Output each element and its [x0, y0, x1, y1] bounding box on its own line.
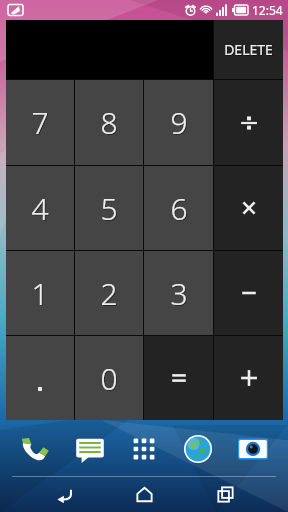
staticText: 6	[170, 188, 188, 229]
button[interactable]: Apps	[125, 430, 163, 468]
button[interactable]: 2	[75, 251, 143, 335]
staticText: 9	[170, 102, 188, 143]
staticText: 12:54	[252, 2, 283, 18]
staticText: 2	[101, 274, 119, 315]
button[interactable]: 7	[6, 80, 74, 165]
button[interactable]	[144, 336, 213, 420]
staticText: 0	[100, 358, 118, 399]
staticText: 1	[31, 273, 49, 314]
staticText: 8	[101, 103, 119, 144]
button[interactable]: DELETE	[214, 20, 283, 79]
button[interactable]: Home	[127, 477, 161, 511]
button[interactable]: 4	[6, 166, 74, 250]
button[interactable]	[214, 80, 283, 165]
button[interactable]	[214, 251, 283, 335]
staticText: 5	[101, 189, 119, 230]
staticText: 3	[171, 274, 189, 315]
staticText: 7	[31, 102, 49, 143]
staticText: DELETE	[224, 40, 273, 59]
staticText: 9	[171, 103, 189, 144]
staticText: 0	[101, 359, 119, 400]
staticText: 1	[32, 274, 50, 315]
button[interactable]: Messaging	[71, 430, 109, 468]
button[interactable]: 0	[75, 336, 143, 420]
staticText: 8	[100, 102, 118, 143]
staticText: 6	[171, 189, 189, 230]
staticText: 3	[170, 273, 188, 314]
button[interactable]: 3	[144, 251, 213, 335]
button[interactable]: Browser	[179, 430, 217, 468]
button[interactable]	[214, 336, 283, 420]
button[interactable]: 9	[144, 80, 213, 165]
button[interactable]: Camera	[234, 430, 272, 468]
button[interactable]: 8	[75, 80, 143, 165]
button[interactable]: 1	[6, 251, 74, 335]
staticText: 4	[32, 189, 50, 230]
button[interactable]: 5	[75, 166, 143, 250]
staticText: 4	[31, 188, 49, 229]
staticText: 5	[100, 188, 118, 229]
button[interactable]: Phone	[16, 430, 54, 468]
button[interactable]	[6, 336, 74, 420]
button[interactable]	[214, 166, 283, 250]
button[interactable]: Recents	[208, 477, 242, 511]
button[interactable]: Back	[47, 477, 81, 511]
staticText: DELETE	[225, 41, 274, 60]
staticText: 2	[100, 273, 118, 314]
staticText: 7	[32, 103, 50, 144]
button[interactable]: 6	[144, 166, 213, 250]
